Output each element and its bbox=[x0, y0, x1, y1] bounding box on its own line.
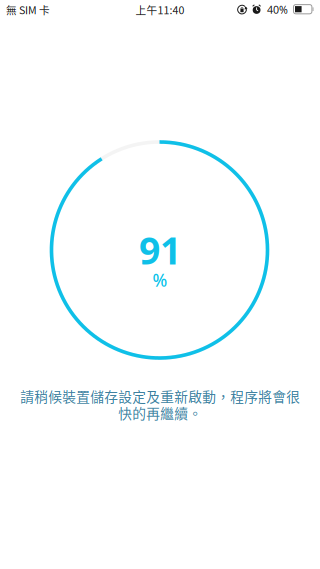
staticText: 無 SIM 卡 bbox=[6, 2, 50, 17]
staticText: 上午11:40 bbox=[135, 2, 184, 17]
staticText: 40% bbox=[267, 2, 288, 17]
staticText: 請稍候裝置儲存設定及重新啟動，程序將會很快的再繼續。 bbox=[20, 386, 300, 423]
staticText: % bbox=[152, 268, 167, 291]
staticText: 91 bbox=[139, 225, 181, 275]
